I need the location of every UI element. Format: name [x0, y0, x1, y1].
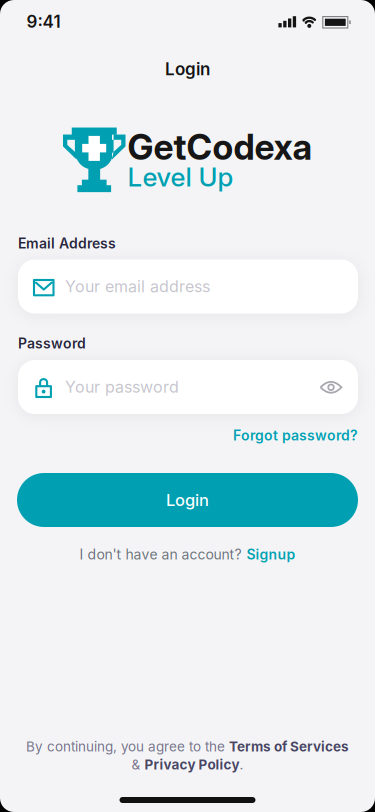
staticText: Your password	[65, 377, 179, 397]
staticText: 9:41	[26, 11, 60, 32]
button[interactable]: Terms of Services	[229, 738, 349, 755]
staticText: .	[239, 756, 243, 773]
staticText: Terms of Services	[229, 738, 349, 755]
button[interactable]: Privacy Policy	[144, 756, 239, 773]
staticText: Email Address	[18, 235, 116, 252]
staticText: Password	[18, 335, 86, 352]
staticText: &	[131, 756, 144, 773]
staticText: Login	[166, 490, 209, 510]
staticText: Signup	[246, 546, 295, 563]
button[interactable]: Forgot password?	[108, 427, 358, 444]
button[interactable]: Your email address	[18, 259, 358, 313]
staticText: Forgot password?	[233, 427, 358, 444]
staticText: Privacy Policy	[144, 756, 239, 773]
staticText: GetCodexa	[127, 126, 312, 168]
staticText: I don't have an account?	[79, 546, 241, 563]
staticText: Your email address	[65, 277, 210, 296]
staticText: Login	[165, 59, 210, 79]
staticText: By continuing, you agree to the	[26, 738, 229, 755]
button[interactable]: Login	[17, 473, 358, 527]
staticText: Level Up	[127, 161, 233, 193]
button[interactable]: Your password	[18, 360, 358, 414]
button[interactable]: Signup	[246, 546, 295, 563]
